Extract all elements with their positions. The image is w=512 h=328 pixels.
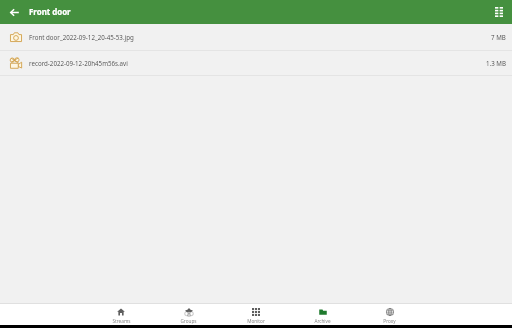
staticText: Streams: [112, 318, 131, 324]
button[interactable]: Streams: [87, 304, 155, 325]
staticText: 7 MB: [491, 33, 506, 41]
button[interactable]: Proxy: [356, 304, 423, 325]
staticText: Front door_2022-09-12_20-45-53.jpg: [29, 33, 491, 41]
staticText: Monitor: [247, 318, 265, 324]
button[interactable]: Monitor: [222, 304, 289, 325]
button[interactable]: record-2022-09-12-20h45m56s.avi: [0, 51, 512, 75]
staticText: Front door: [29, 7, 71, 18]
button[interactable]: Front door_2022-09-12_20-45-53.jpg: [0, 24, 512, 50]
button[interactable]: Change view: [489, 2, 509, 22]
staticText: Groups: [180, 318, 197, 324]
staticText: 1.3 MB: [486, 59, 506, 67]
staticText: Archive: [314, 318, 331, 324]
staticText: record-2022-09-12-20h45m56s.avi: [29, 59, 486, 67]
button[interactable]: Back: [4, 2, 24, 22]
staticText: Proxy: [383, 318, 396, 324]
button[interactable]: Groups: [155, 304, 222, 325]
button[interactable]: Archive: [289, 304, 356, 325]
